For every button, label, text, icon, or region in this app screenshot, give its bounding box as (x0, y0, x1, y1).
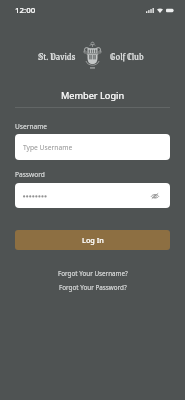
button[interactable]: Type Username (15, 134, 170, 160)
staticText: Password (15, 170, 45, 179)
staticText: Forgot Your Username? (58, 269, 128, 278)
button[interactable]: Forgot Your Password? (0, 283, 185, 292)
staticText: Username (15, 122, 48, 131)
staticText: Golf Club (110, 48, 144, 64)
staticText: Type Username (23, 143, 73, 152)
staticText: Forgot Your Password? (59, 283, 127, 292)
button[interactable]: Show password (149, 190, 161, 202)
staticText: 12:00 (15, 5, 36, 16)
button[interactable]: Show password (15, 183, 170, 208)
staticText: Member Login (0, 89, 185, 102)
button[interactable]: Forgot Your Username? (0, 269, 185, 278)
button[interactable]: Log In (15, 230, 170, 250)
staticText: St. Davids (38, 48, 76, 64)
staticText: Log In (82, 235, 104, 245)
